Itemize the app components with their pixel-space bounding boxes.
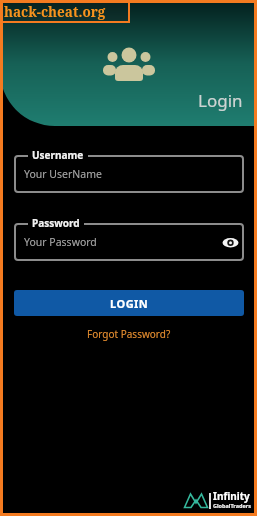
staticText: Your UserName — [24, 167, 102, 181]
button[interactable]: Forgot Password? — [87, 327, 171, 341]
staticText: Your Password — [24, 235, 97, 249]
staticText: GlobalTraders — [213, 502, 251, 509]
staticText: hack-cheat.org — [4, 3, 106, 21]
staticText: Login — [198, 89, 243, 112]
button[interactable] — [222, 236, 239, 249]
button[interactable]: LOGIN — [14, 290, 244, 316]
button[interactable]: Your Password — [14, 223, 244, 261]
button[interactable]: Your UserName — [14, 155, 244, 193]
staticText: LOGIN — [110, 296, 149, 311]
staticText: Password — [32, 216, 80, 230]
staticText: Username — [32, 148, 84, 162]
staticText: Infinity — [213, 489, 250, 503]
